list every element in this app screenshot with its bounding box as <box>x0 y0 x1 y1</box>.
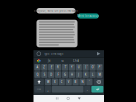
staticText: Je <box>48 59 51 62</box>
staticText: Merci beaucoup <box>77 14 99 18</box>
staticText: O <box>92 65 94 69</box>
staticText: S <box>44 73 45 76</box>
staticText: D <box>50 73 52 76</box>
button[interactable]: Chat <box>73 59 79 62</box>
button[interactable]: G <box>62 71 68 78</box>
button[interactable]: Y <box>69 64 75 71</box>
button[interactable]: R <box>55 64 61 71</box>
staticText: U <box>78 65 80 69</box>
staticText: L <box>92 73 93 76</box>
staticText: V <box>68 80 70 84</box>
button[interactable]: F <box>55 71 61 78</box>
staticText: ?123 <box>37 88 41 90</box>
staticText: G <box>64 73 66 76</box>
staticText: Tu <box>61 59 64 62</box>
button[interactable]: K <box>83 71 89 78</box>
button[interactable]: B <box>72 79 79 85</box>
staticText: Y <box>71 65 73 69</box>
staticText: Z <box>43 65 45 69</box>
staticText: F <box>58 73 59 76</box>
staticText: I <box>85 65 86 69</box>
staticText: Type a message <box>44 52 64 55</box>
button[interactable]: H <box>69 71 75 78</box>
button[interactable]: , <box>45 86 51 92</box>
button[interactable]: D <box>48 71 54 78</box>
staticText: N <box>81 80 83 84</box>
staticText: 9 <box>94 64 95 66</box>
button[interactable]: Recents <box>55 97 59 100</box>
button[interactable]: S <box>41 71 47 78</box>
staticText: 0 <box>101 64 102 66</box>
button[interactable]: Delete <box>94 79 103 85</box>
staticText: 1 <box>39 64 40 66</box>
staticText: R <box>57 65 59 69</box>
staticText: . <box>87 86 88 92</box>
button[interactable]: Shift <box>34 79 44 85</box>
staticText: W <box>47 80 49 84</box>
button[interactable]: ?123 <box>34 86 44 92</box>
button[interactable]: Je <box>48 59 51 62</box>
staticText: K <box>85 73 87 76</box>
button[interactable]: Z <box>41 64 47 71</box>
staticText: H <box>71 73 73 76</box>
staticText: Chat <box>73 59 79 62</box>
button[interactable]: T <box>62 64 68 71</box>
staticText: 6 <box>73 64 74 66</box>
staticText: B <box>75 80 77 84</box>
button[interactable]: C <box>59 79 65 85</box>
button[interactable]: P <box>96 64 103 71</box>
button[interactable]: Return <box>91 86 103 92</box>
button[interactable]: Emoji <box>37 52 41 56</box>
staticText: X <box>54 80 56 84</box>
button[interactable]: J <box>76 71 82 78</box>
staticText: T <box>64 65 65 69</box>
button[interactable]: Gboard <box>36 58 41 63</box>
staticText: M <box>98 73 100 76</box>
staticText: ' <box>89 80 90 84</box>
button[interactable]: L <box>89 71 96 78</box>
staticText: 5 <box>66 64 67 66</box>
button[interactable]: Send <box>97 52 100 55</box>
staticText: Q <box>36 73 38 76</box>
button[interactable]: E <box>48 64 54 71</box>
button[interactable]: Home <box>66 97 70 100</box>
staticText: E <box>51 65 52 69</box>
button[interactable]: A <box>34 64 40 71</box>
staticText: 4 <box>59 64 60 66</box>
button[interactable]: . <box>84 86 90 92</box>
button[interactable]: Q <box>34 71 40 78</box>
button[interactable]: U <box>76 64 82 71</box>
button[interactable]: Hide keyboard <box>78 97 81 100</box>
button[interactable]: Tu <box>61 59 64 62</box>
staticText: A <box>36 65 38 69</box>
button[interactable]: I <box>83 64 89 71</box>
staticText: 3 <box>52 64 53 66</box>
staticText: C <box>61 80 63 84</box>
staticText: 7 <box>80 64 81 66</box>
button[interactable]: ' <box>86 79 92 85</box>
staticText: Bonjour, voici un petit message <box>33 9 78 12</box>
button[interactable]: M <box>96 71 103 78</box>
button[interactable]: N <box>79 79 86 85</box>
staticText: P <box>98 65 100 69</box>
button[interactable]: W <box>45 79 51 85</box>
button[interactable]: V <box>66 79 72 85</box>
button[interactable]: O <box>89 64 96 71</box>
button[interactable]: Space <box>52 86 83 92</box>
button[interactable]: X <box>52 79 58 85</box>
staticText: 8 <box>87 64 88 66</box>
